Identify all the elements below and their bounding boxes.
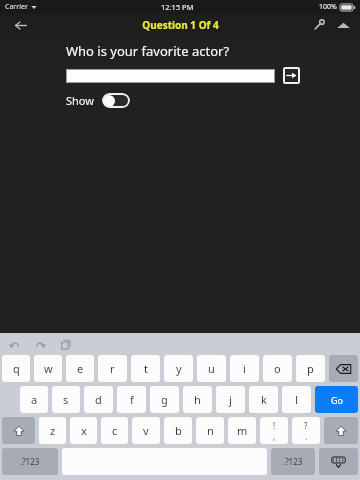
button[interactable]: r [98,355,127,382]
staticText: s [63,392,69,407]
button[interactable]: b [164,417,192,444]
staticText: k [261,392,267,407]
staticText: e [77,361,84,376]
staticText: w [44,361,53,376]
staticText: 12:15 PM [161,2,194,12]
button[interactable]: h [183,386,212,413]
staticText: b [175,423,182,438]
staticText: u [208,361,215,376]
button[interactable]: p [296,355,325,382]
staticText: d [95,392,102,407]
button[interactable]: o [263,355,292,382]
button[interactable]: s [52,386,80,413]
button[interactable]: Redo [32,336,48,352]
staticText: y [176,361,182,376]
button[interactable]: Backspace [329,355,358,382]
button[interactable]: i [230,355,259,382]
button[interactable]: Paste [58,336,74,352]
staticText: g [161,392,168,407]
staticText: Show [66,93,94,108]
button[interactable]: x [70,417,97,444]
staticText: . [305,431,308,442]
button[interactable]: ! [260,417,288,444]
button[interactable]: v [132,417,160,444]
button[interactable]: f [117,386,146,413]
staticText: 100% [319,2,337,12]
button[interactable]: k [249,386,278,413]
button[interactable]: t [131,355,160,382]
staticText: c [112,423,118,438]
staticText: n [207,423,214,438]
staticText: Who is your favorite actor? [66,42,230,60]
button[interactable]: Undo [6,336,22,352]
staticText: ? [304,420,308,431]
button[interactable]: l [282,386,311,413]
staticText: a [31,392,38,407]
button[interactable]: m [228,417,256,444]
button[interactable]: y [164,355,193,382]
staticText: Go [331,394,343,406]
button[interactable]: q [2,355,30,382]
staticText: q [13,361,20,376]
staticText: p [307,361,314,376]
staticText: z [50,423,56,438]
button[interactable]: Go [315,386,358,413]
staticText: f [130,392,134,407]
button[interactable]: c [101,417,128,444]
button[interactable] [66,69,275,83]
staticText: h [194,392,201,407]
staticText: t [144,361,148,376]
staticText: m [237,423,248,438]
staticText: j [229,392,232,407]
button[interactable]: Back [8,14,32,36]
staticText: l [295,392,298,407]
button[interactable]: Home [332,14,354,36]
button[interactable]: e [66,355,94,382]
button[interactable]: .?123 [271,448,315,475]
button[interactable]: g [150,386,179,413]
button[interactable]: Shift [324,417,358,444]
button[interactable]: Show [66,93,130,108]
staticText: i [243,361,246,376]
staticText: .?123 [283,456,303,467]
button[interactable]: Settings [308,14,330,36]
staticText: ! [273,420,276,431]
button[interactable]: z [39,417,66,444]
button[interactable]: Submit answer [283,67,300,84]
button[interactable]: .?123 [2,448,58,475]
button[interactable]: w [34,355,62,382]
button[interactable]: n [196,417,224,444]
button[interactable]: j [216,386,245,413]
button[interactable]: a [20,386,48,413]
staticText: , [273,431,276,442]
button[interactable]: d [84,386,113,413]
button[interactable]: ? [292,417,320,444]
staticText: o [274,361,281,376]
staticText: .?123 [20,456,40,467]
button[interactable]: Shift [2,417,35,444]
staticText: r [110,361,115,376]
staticText: Carrier [5,2,28,12]
staticText: Question 1 Of 4 [142,18,219,32]
button[interactable]: Hide keyboard [319,448,358,475]
staticText: v [143,423,149,438]
button[interactable]: u [197,355,226,382]
staticText: x [81,423,87,438]
